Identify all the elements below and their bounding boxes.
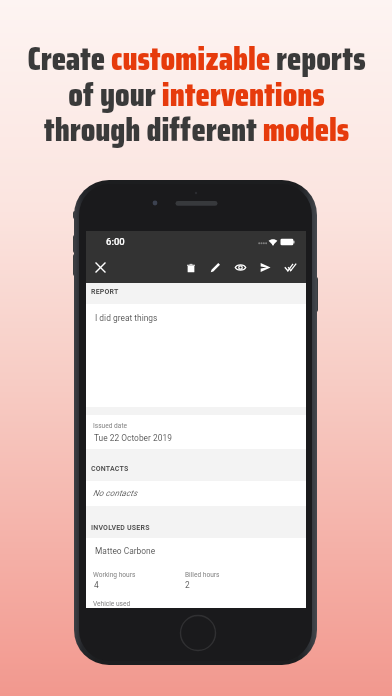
staticText: INVOLVED USERS	[91, 524, 150, 532]
staticText: CONTACTS	[91, 465, 129, 473]
staticText: Vehicle used	[93, 600, 131, 608]
staticText: Working hours	[93, 571, 136, 579]
staticText: 6:00	[106, 236, 125, 247]
button[interactable]: Edit	[203, 255, 228, 280]
staticText: No contacts	[93, 488, 138, 498]
staticText: REPORT	[91, 288, 119, 296]
button[interactable]: Send	[253, 255, 278, 280]
staticText: I did great things	[95, 313, 158, 323]
staticText: Issued date	[93, 422, 128, 430]
button[interactable]: Preview	[228, 255, 253, 280]
staticText: Create customizable reports of your inte…	[27, 33, 366, 155]
button[interactable]: Delete	[178, 255, 203, 280]
button[interactable]: Close	[88, 255, 113, 280]
staticText: Matteo Carbone	[95, 546, 156, 556]
staticText: 2	[185, 580, 190, 590]
staticText: Tue 22 October 2019	[94, 433, 172, 443]
staticText: 4	[94, 580, 99, 590]
staticText: Billed hours	[185, 571, 220, 579]
button[interactable]: Mark as done	[278, 255, 303, 280]
